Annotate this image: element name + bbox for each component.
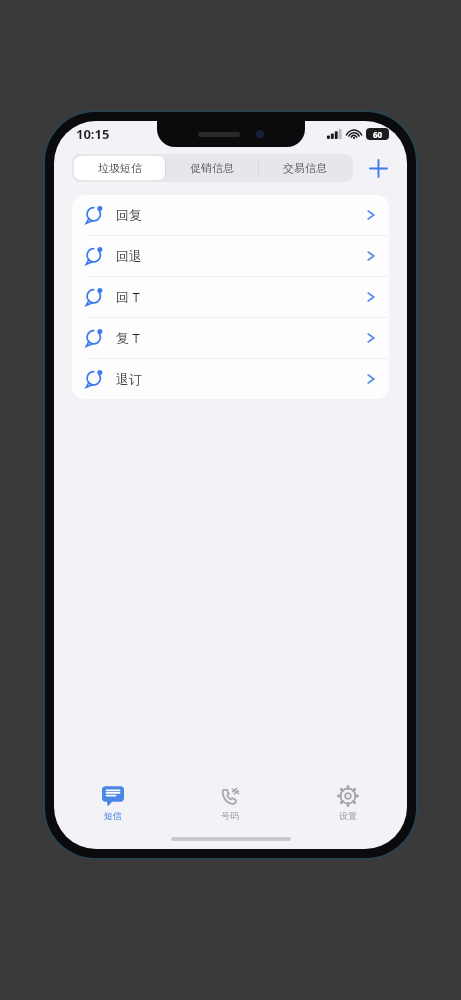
- button[interactable]: 回 T: [72, 277, 389, 317]
- staticText: 10:15: [76, 125, 110, 143]
- staticText: 号码: [221, 810, 239, 821]
- button[interactable]: 号码: [171, 777, 289, 829]
- button[interactable]: 短信: [54, 777, 171, 829]
- staticText: 回复: [116, 207, 367, 223]
- staticText: 设置: [339, 810, 357, 821]
- staticText: 退订: [116, 371, 367, 387]
- button[interactable]: 垃圾短信: [74, 156, 165, 180]
- staticText: 垃圾短信: [98, 161, 142, 175]
- staticText: 60: [373, 129, 383, 140]
- button[interactable]: 复 T: [72, 318, 389, 358]
- staticText: 回 T: [116, 288, 367, 306]
- staticText: 回退: [116, 248, 367, 264]
- button[interactable]: 促销信息: [166, 156, 258, 180]
- button[interactable]: Add: [363, 153, 393, 183]
- button[interactable]: 回复: [72, 195, 389, 235]
- staticText: 短信: [104, 810, 122, 821]
- staticText: 交易信息: [283, 161, 327, 175]
- button[interactable]: 退订: [72, 359, 389, 399]
- button[interactable]: 回退: [72, 236, 389, 276]
- staticText: 促销信息: [190, 161, 234, 175]
- button[interactable]: 设置: [289, 777, 407, 829]
- staticText: 复 T: [116, 329, 367, 347]
- button[interactable]: 交易信息: [259, 156, 351, 180]
